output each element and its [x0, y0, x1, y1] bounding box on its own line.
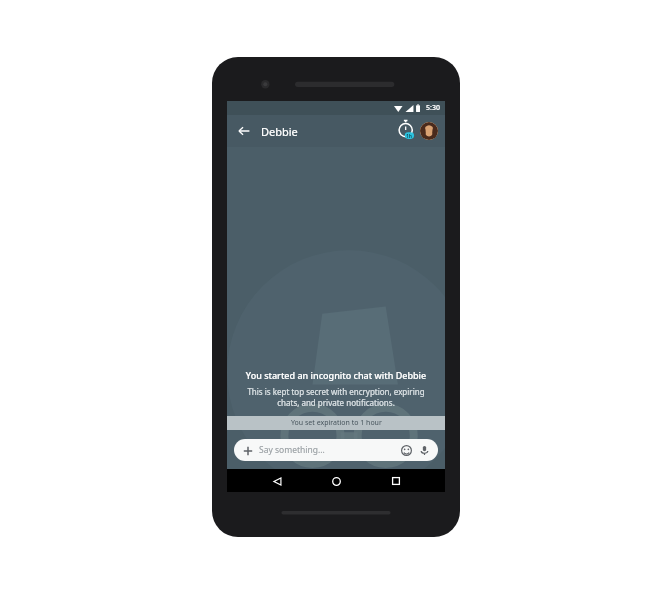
button[interactable]: Chat expiration timer — [396, 120, 418, 142]
staticText: 5:30 — [426, 103, 440, 113]
staticText: 1h — [406, 133, 413, 140]
button[interactable]: Recent apps — [386, 471, 406, 491]
button[interactable]: Back — [267, 471, 287, 491]
button[interactable]: Debbie profile photo — [420, 122, 438, 140]
staticText: This is kept top secret with encryption,… — [243, 386, 429, 408]
button[interactable]: Voice message — [417, 443, 432, 458]
button[interactable]: Emoji — [399, 443, 414, 458]
staticText: You started an incognito chat with Debbi… — [233, 369, 439, 381]
button[interactable]: Home — [326, 471, 346, 491]
button[interactable]: You set expiration to 1 hour — [227, 416, 445, 430]
button[interactable]: Add attachment — [234, 439, 438, 461]
staticText: Say something... — [259, 444, 325, 456]
button[interactable]: Add attachment — [241, 444, 254, 457]
staticText: Debbie — [261, 124, 298, 139]
staticText: You set expiration to 1 hour — [291, 418, 382, 428]
button[interactable]: Back — [233, 120, 255, 142]
